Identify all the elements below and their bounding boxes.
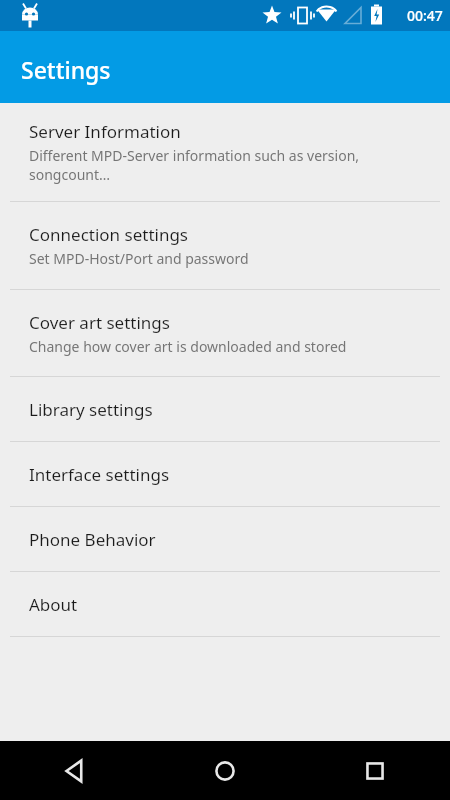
staticText: Server Information [29,120,181,143]
staticText: About [29,593,78,616]
staticText: Connection settings [29,223,189,246]
button[interactable]: Server Information [0,103,450,201]
button[interactable]: Cover art settings [0,290,450,376]
button[interactable]: Connection settings [0,202,450,289]
button[interactable]: Back [0,741,150,800]
staticText: Library settings [29,398,153,421]
staticText: Set MPD-Host/Port and password [29,249,249,268]
button[interactable]: Home [150,741,300,800]
button[interactable]: About [0,572,450,636]
button[interactable]: Recent apps [300,741,450,800]
staticText: Cover art settings [29,311,170,334]
button[interactable]: Interface settings [0,442,450,506]
button[interactable]: Library settings [0,377,450,441]
button[interactable]: Phone Behavior [0,507,450,571]
staticText: 00:47 [407,6,443,25]
staticText: Phone Behavior [29,528,156,551]
staticText: Change how cover art is downloaded and s… [29,337,347,356]
staticText: Interface settings [29,463,170,486]
staticText: Different MPD-Server information such as… [29,146,360,184]
staticText: Settings [21,54,111,85]
